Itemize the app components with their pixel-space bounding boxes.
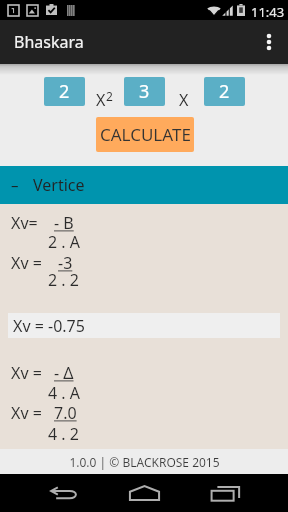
staticText: 4 . 2 — [48, 423, 79, 445]
staticText: - B — [54, 212, 74, 234]
button[interactable]: Recents — [201, 474, 249, 512]
button[interactable]: More options — [250, 20, 288, 64]
staticText: 1.0.0 | © BLACKROSE 2015 — [69, 454, 220, 470]
staticText: Xv = — [11, 252, 42, 274]
button[interactable]: Home — [120, 474, 168, 512]
button[interactable]: 2 — [204, 77, 245, 106]
staticText: X — [96, 89, 106, 111]
staticText: 4 . A — [48, 382, 80, 404]
staticText: 3 — [139, 79, 150, 104]
staticText: Xv= — [11, 212, 38, 234]
button[interactable]: Back — [40, 474, 88, 512]
staticText: 2 . A — [48, 231, 80, 253]
button[interactable]: CALCULATE — [96, 117, 194, 152]
button[interactable]: Xv = -0.75 — [8, 313, 280, 338]
staticText: Xv = — [11, 402, 42, 424]
button[interactable]: 3 — [124, 77, 165, 106]
button[interactable]: – — [0, 166, 288, 204]
staticText: 2 — [106, 88, 113, 104]
staticText: 7.0 — [54, 402, 77, 424]
staticText: Bhaskara — [14, 31, 84, 53]
button[interactable]: 2 — [44, 77, 85, 106]
staticText: 2 — [59, 79, 70, 104]
staticText: – — [11, 175, 19, 195]
staticText: -3 — [58, 252, 73, 274]
staticText: Vertice — [33, 174, 85, 196]
staticText: 11:43 — [251, 3, 285, 21]
staticText: Xv = — [11, 362, 42, 384]
staticText: 2 . 2 — [48, 269, 79, 291]
staticText: X — [179, 89, 189, 111]
staticText: 2 — [219, 79, 230, 104]
staticText: CALCULATE — [100, 123, 191, 146]
staticText: - Δ — [54, 362, 74, 384]
staticText: Xv = -0.75 — [13, 315, 85, 337]
